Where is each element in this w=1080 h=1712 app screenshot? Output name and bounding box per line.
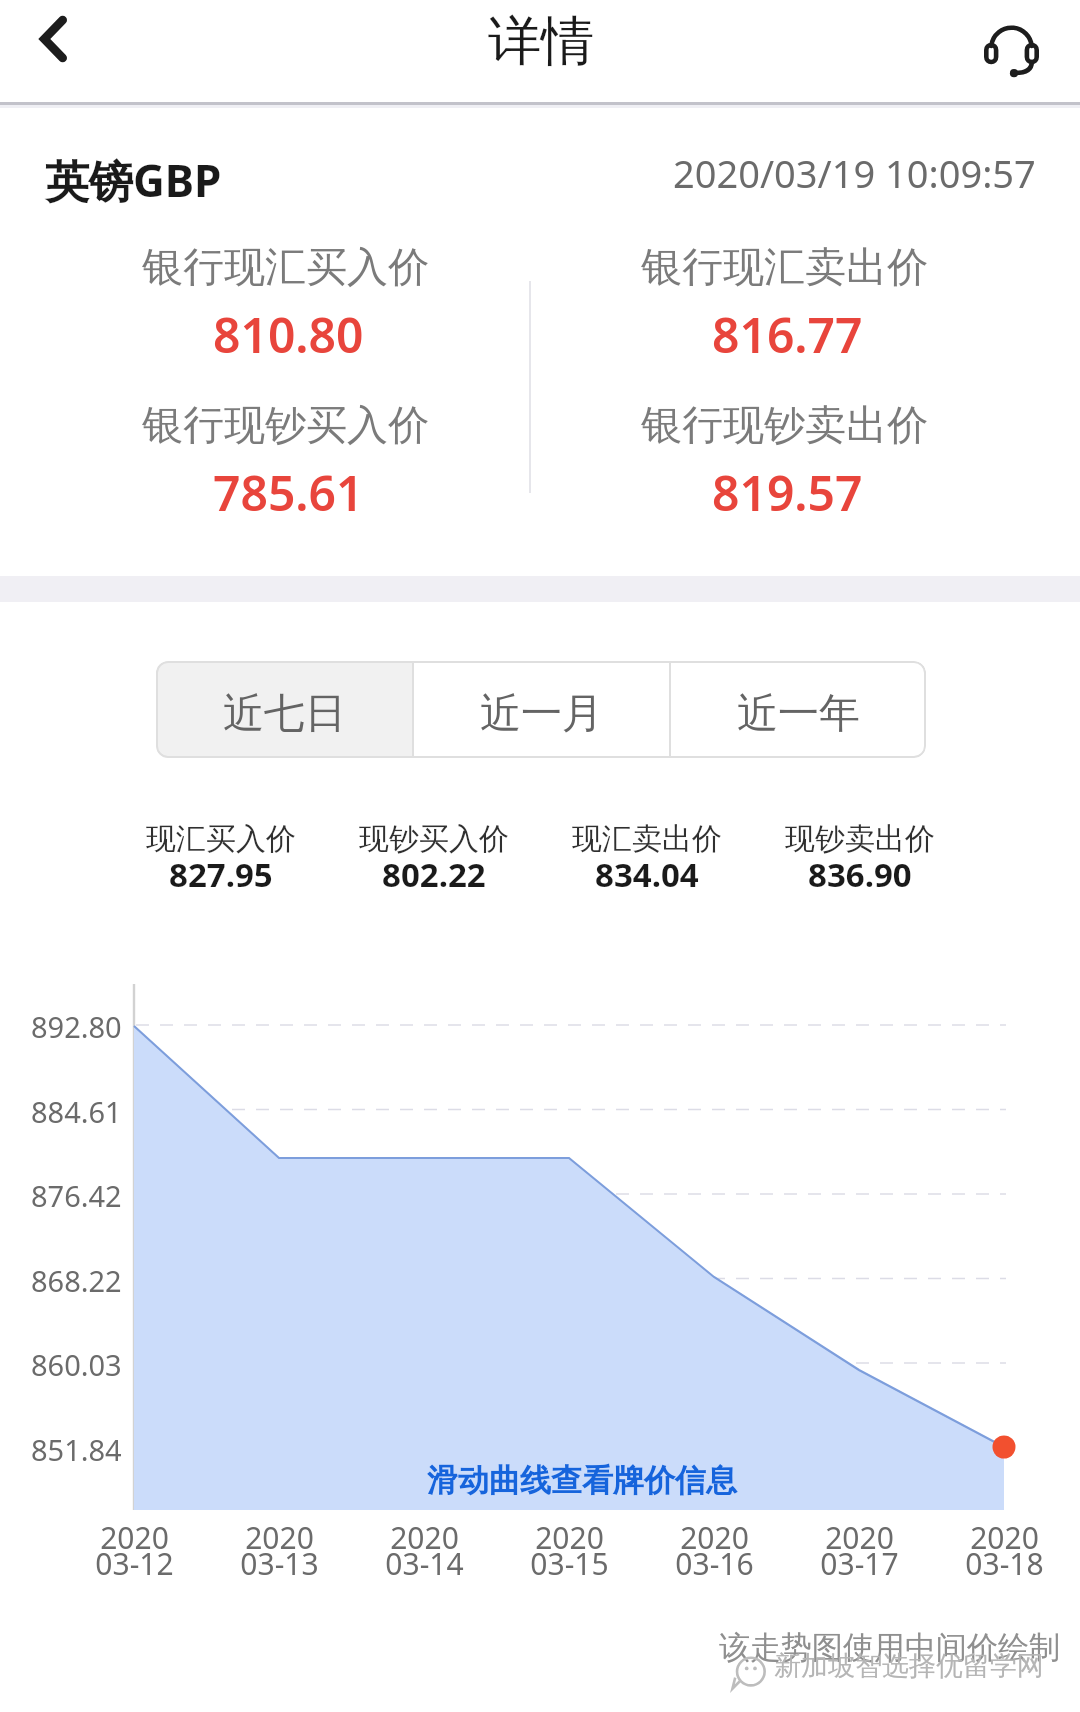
staticText: 802.22 [382,852,486,897]
staticText: 现汇买入价 [146,820,296,858]
staticText: 816.77 [712,302,863,367]
button[interactable]: 现钞买入价 [324,820,544,903]
staticText: 该走势图使用中间价绘制 [719,1628,1060,1667]
button[interactable]: Back [14,4,94,84]
staticText: 810.80 [213,302,364,367]
staticText: 851.84 [31,1430,122,1469]
staticText: 827.95 [169,852,273,897]
staticText: 近一月 [480,688,603,740]
staticText: 滑动曲线查看牌价信息 [427,1461,737,1500]
button[interactable]: 现钞卖出价 [750,820,970,903]
staticText: 834.04 [595,852,699,897]
button[interactable]: 现汇买入价 [111,820,331,903]
staticText: 884.61 [31,1092,122,1131]
staticText: 2020 03-17 [820,1517,899,1584]
staticText: 英镑GBP [45,150,222,210]
button[interactable]: 近一年 [671,661,926,758]
button[interactable]: 现汇卖出价 [537,820,757,903]
staticText: 860.03 [31,1345,122,1384]
staticText: 2020 03-12 [95,1517,174,1584]
staticText: 836.90 [808,852,912,897]
staticText: 现汇卖出价 [572,820,722,858]
staticText: 2020/03/19 10:09:57 [673,147,1036,199]
staticText: 现钞买入价 [359,820,509,858]
staticText: 819.57 [712,460,863,525]
staticText: 银行现钞卖出价 [641,400,928,452]
staticText: 2020 03-18 [965,1517,1044,1584]
staticText: 2020 03-15 [530,1517,609,1584]
staticText: 银行现汇卖出价 [641,242,928,294]
staticText: 868.22 [31,1261,122,1300]
staticText: 785.61 [213,460,364,525]
staticText: 新加坡智选择优留学网 [774,1649,1044,1683]
staticText: 2020 03-16 [675,1517,754,1584]
staticText: 876.42 [31,1176,122,1215]
staticText: 现钞卖出价 [785,820,935,858]
staticText: 详情 [488,8,594,75]
staticText: 2020 03-14 [385,1517,464,1584]
staticText: 892.80 [31,1007,122,1046]
button[interactable]: 近七日 [156,661,412,758]
staticText: 银行现钞买入价 [142,400,429,452]
button[interactable]: 近一月 [414,661,669,758]
staticText: 近七日 [223,688,346,740]
staticText: 银行现汇买入价 [142,242,429,294]
button[interactable]: Customer service [975,15,1048,88]
staticText: 2020 03-13 [240,1517,319,1584]
staticText: 近一年 [737,688,860,740]
